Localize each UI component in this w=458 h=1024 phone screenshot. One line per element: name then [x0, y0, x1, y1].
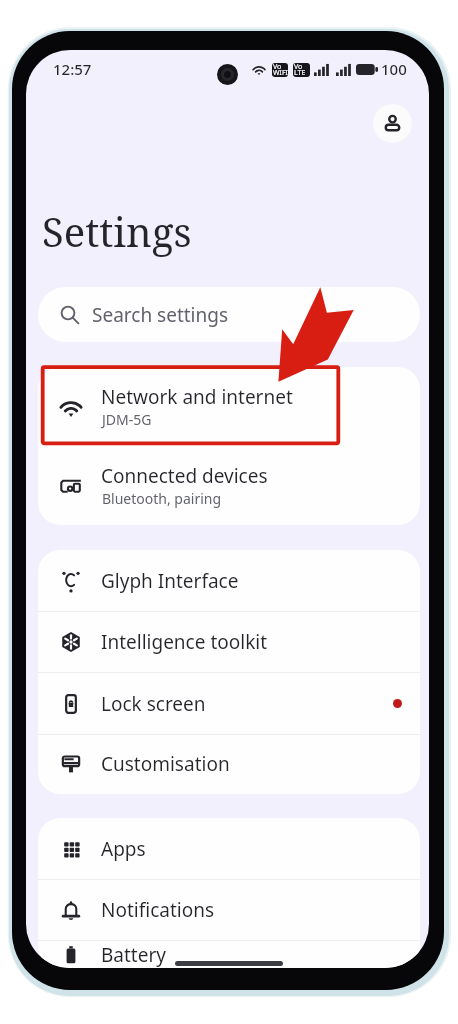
staticText: Vo — [273, 63, 282, 72]
button[interactable]: Battery — [38, 941, 420, 968]
staticText: Battery — [101, 942, 166, 968]
staticText: WIFI — [273, 68, 288, 77]
staticText: Customisation — [101, 751, 230, 777]
staticText: Lock screen — [101, 691, 206, 717]
button[interactable]: Intelligence toolkit — [38, 612, 420, 672]
button[interactable]: Notifications — [38, 880, 420, 940]
button[interactable]: Search settings — [38, 287, 420, 342]
button[interactable]: Lock screen — [38, 673, 420, 734]
staticText: Glyph Interface — [101, 568, 239, 594]
staticText: 100 — [381, 59, 407, 79]
button[interactable]: Account — [373, 104, 412, 143]
staticText: Settings — [42, 204, 192, 258]
staticText: JDM-5G — [102, 410, 152, 429]
staticText: Connected devices — [101, 463, 268, 489]
button[interactable]: Connected devices — [38, 446, 420, 525]
staticText: Apps — [101, 836, 146, 862]
button[interactable]: Customisation — [38, 735, 420, 793]
staticText: 12:57 — [53, 59, 92, 79]
button[interactable]: Apps — [38, 818, 420, 879]
staticText: Bluetooth, pairing — [102, 489, 222, 508]
button[interactable]: Glyph Interface — [38, 550, 420, 611]
staticText: Vo — [294, 63, 303, 72]
staticText: Search settings — [92, 302, 229, 328]
staticText: LTE — [294, 68, 306, 77]
staticText: Network and internet — [101, 384, 293, 410]
staticText: Notifications — [101, 897, 215, 923]
button[interactable]: Network and internet — [38, 367, 420, 446]
staticText: Intelligence toolkit — [101, 629, 268, 655]
